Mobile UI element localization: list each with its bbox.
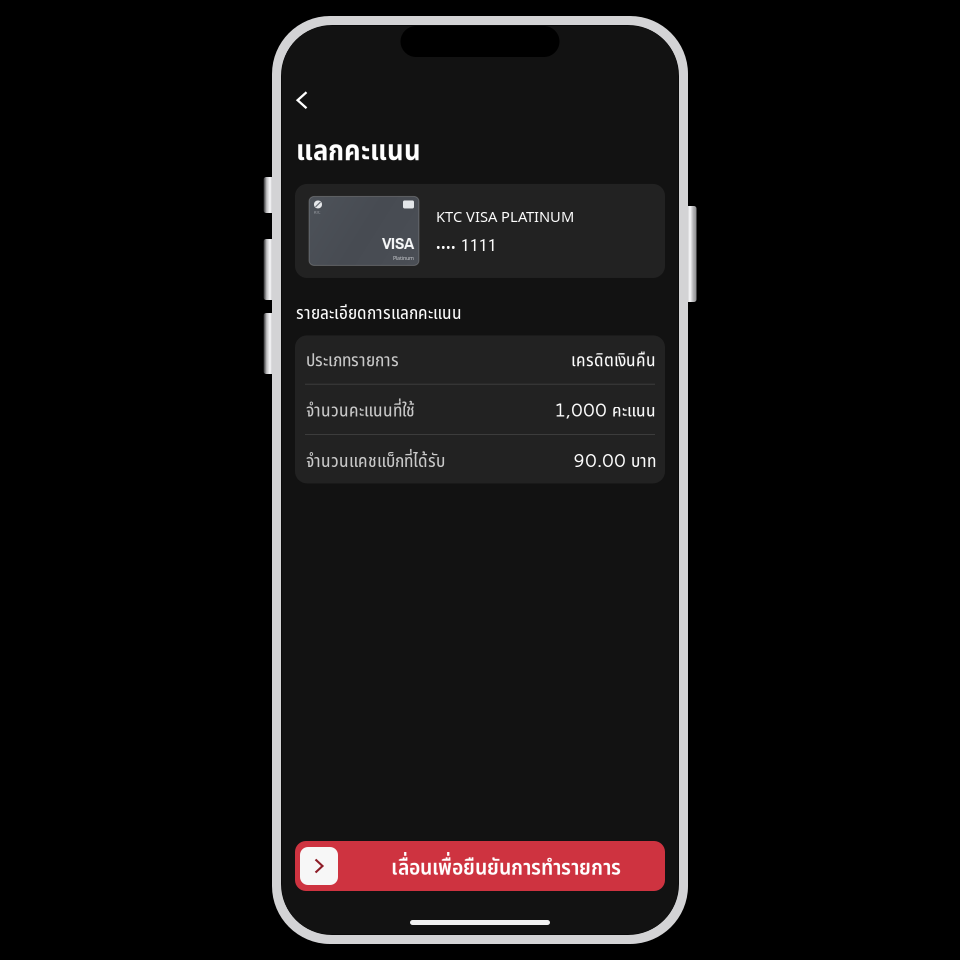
button[interactable]: KTC: [295, 184, 665, 278]
staticText: รายละเอียดการแลกคะแนน: [296, 299, 462, 324]
staticText: จำนวนแคชแบ็กที่ได้รับ: [306, 447, 445, 472]
button[interactable]: Back: [282, 86, 678, 114]
staticText: จำนวนคะแนนที่ใช้: [306, 397, 415, 422]
staticText: เลื่อนเพื่อยืนยันการทำรายการ: [391, 851, 621, 881]
staticText: 90.00 บาท: [573, 446, 656, 473]
staticText: Platinum: [393, 254, 414, 261]
staticText: เครดิตเงินคืน: [571, 346, 656, 372]
staticText: แลกคะแนน: [296, 129, 421, 169]
staticText: ประเภทรายการ: [306, 346, 399, 372]
staticText: ••••: [436, 239, 456, 255]
staticText: 1111: [461, 235, 497, 255]
staticText: KTC: [314, 209, 321, 215]
button[interactable]: เลื่อนเพื่อยืนยันการทำรายการ: [295, 841, 665, 891]
staticText: 1,000 คะแนน: [554, 396, 656, 423]
staticText: KTC VISA PLATINUM: [436, 207, 574, 226]
staticText: VISA: [382, 231, 414, 254]
